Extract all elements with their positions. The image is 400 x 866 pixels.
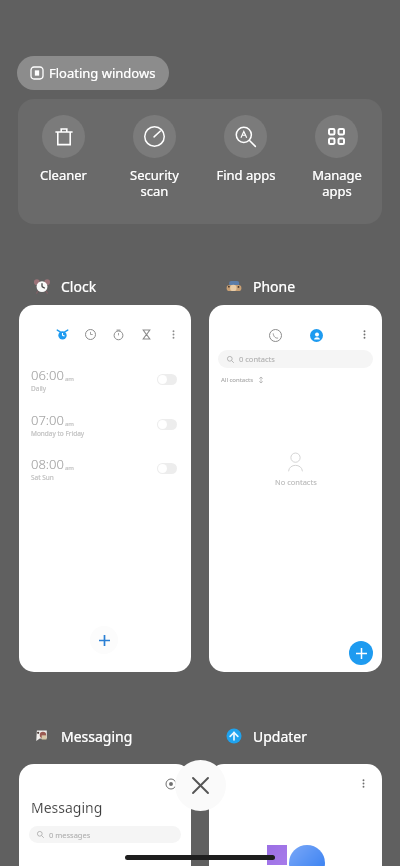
staticText: am bbox=[65, 375, 74, 383]
button[interactable] bbox=[209, 764, 382, 866]
staticText: Messaging bbox=[31, 798, 103, 817]
button[interactable]: Add contact bbox=[349, 641, 373, 665]
button[interactable]: 0 messages bbox=[29, 826, 181, 843]
staticText: Updater bbox=[253, 727, 308, 746]
button[interactable]: Messaging bbox=[19, 764, 191, 866]
staticText: Manage apps bbox=[312, 166, 362, 199]
button[interactable]: Manage apps bbox=[291, 99, 382, 199]
button[interactable]: 06:00 bbox=[19, 305, 191, 672]
button[interactable]: 0 contacts bbox=[218, 350, 373, 368]
staticText: All contacts bbox=[221, 376, 254, 384]
button[interactable]: Toggle alarm bbox=[157, 463, 177, 474]
staticText: 07:00 bbox=[31, 411, 64, 429]
staticText: am bbox=[65, 464, 74, 472]
staticText: Find apps bbox=[216, 166, 276, 184]
button[interactable]: Security scan bbox=[109, 99, 200, 199]
button[interactable]: Toggle alarm bbox=[157, 374, 177, 385]
button[interactable]: Phone bbox=[225, 274, 296, 298]
staticText: Sat Sun bbox=[31, 473, 54, 482]
button[interactable]: Cleaner bbox=[18, 99, 109, 184]
staticText: Security scan bbox=[130, 166, 179, 199]
staticText: No contacts bbox=[275, 477, 317, 487]
staticText: 06:00 bbox=[31, 366, 64, 384]
staticText: Daily bbox=[31, 384, 47, 393]
staticText: 0 contacts bbox=[239, 354, 275, 364]
button[interactable]: Find apps bbox=[200, 99, 291, 184]
button[interactable]: Toggle alarm bbox=[157, 419, 177, 430]
button[interactable]: 0 contacts bbox=[209, 305, 382, 672]
staticText: Messaging bbox=[61, 727, 133, 746]
staticText: Floating windows bbox=[49, 64, 156, 82]
staticText: Monday to Friday bbox=[31, 429, 85, 438]
button[interactable]: Clock bbox=[33, 274, 97, 298]
staticText: 0 messages bbox=[49, 830, 91, 840]
staticText: Phone bbox=[253, 277, 296, 296]
staticText: 08:00 bbox=[31, 455, 64, 473]
button[interactable]: Floating windows bbox=[17, 56, 169, 90]
staticText: Cleaner bbox=[40, 166, 87, 184]
staticText: Clock bbox=[61, 277, 97, 296]
button[interactable]: Close bbox=[175, 760, 226, 811]
button[interactable]: Messaging bbox=[33, 724, 133, 748]
button[interactable]: Add alarm bbox=[90, 626, 118, 654]
staticText: am bbox=[65, 420, 74, 428]
button[interactable]: Updater bbox=[225, 724, 308, 748]
